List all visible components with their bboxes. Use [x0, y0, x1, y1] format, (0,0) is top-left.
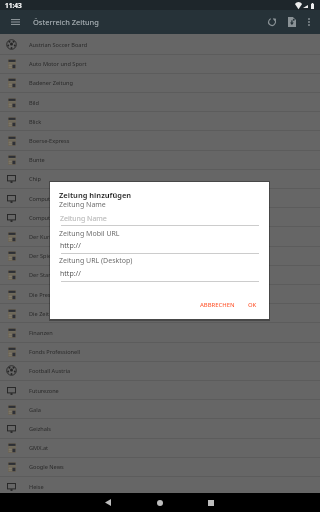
button[interactable]: More options [300, 13, 318, 31]
button[interactable]: Football Austria [0, 361, 320, 380]
button[interactable]: Die Zeit [0, 304, 320, 323]
staticText: 11:43 [5, 1, 22, 10]
button[interactable]: Auto Motor und Sport [0, 54, 320, 73]
button[interactable]: Gala [0, 400, 320, 419]
button[interactable]: Chip [0, 169, 320, 188]
staticText: Chip [29, 175, 41, 183]
staticText: Zeitung Name [60, 214, 107, 224]
staticText: http:// [60, 241, 81, 251]
staticText: Die Presse [29, 291, 57, 299]
button[interactable]: Computerwoche [0, 208, 320, 227]
button[interactable]: Back [93, 493, 123, 512]
staticText: Der Kurier [29, 233, 57, 241]
staticText: Fonds Professionell [29, 348, 81, 356]
staticText: Computerwoche [29, 214, 73, 222]
button[interactable]: Recent apps [196, 493, 226, 512]
button[interactable]: Heise [0, 477, 320, 496]
staticText: Boerse-Express [29, 137, 70, 145]
staticText: Zeitung hinzufügen [59, 190, 132, 200]
staticText: Heise [29, 483, 44, 491]
button[interactable]: Blick [0, 112, 320, 131]
button[interactable]: Computerbase [0, 189, 320, 208]
button[interactable]: Futurezone [0, 381, 320, 400]
staticText: Die Zeit [29, 310, 49, 318]
button[interactable]: Google News [0, 457, 320, 476]
button[interactable]: Add newspaper [283, 13, 301, 31]
button[interactable]: Fonds Professionell [0, 342, 320, 361]
button[interactable]: Boerse-Express [0, 131, 320, 150]
button[interactable]: Bild [0, 93, 320, 112]
staticText: Finanzen [29, 329, 53, 337]
staticText: Zeitung Name [59, 200, 106, 210]
staticText: Bild [29, 99, 39, 107]
staticText: http:// [60, 269, 81, 279]
staticText: Auto Motor und Sport [29, 60, 87, 68]
staticText: Austrian Soccer Board [29, 41, 88, 49]
button[interactable]: Bunte [0, 150, 320, 169]
button[interactable]: Home [145, 493, 175, 512]
button[interactable]: GMX.at [0, 438, 320, 457]
button[interactable]: Der Spiegel [0, 246, 320, 265]
button[interactable]: Finanzen [0, 323, 320, 342]
button[interactable]: Badener Zeitung [0, 73, 320, 92]
staticText: Zeitung URL (Desktop) [59, 256, 133, 266]
staticText: Blick [29, 118, 42, 126]
staticText: Football Austria [29, 367, 71, 375]
staticText: Gala [29, 406, 41, 414]
staticText: Google News [29, 463, 64, 471]
staticText: Futurezone [29, 387, 59, 395]
staticText: Der Standard [29, 271, 64, 279]
button[interactable]: Refresh [263, 13, 281, 31]
staticText: OK [248, 301, 257, 309]
button[interactable]: Open navigation drawer [6, 13, 24, 31]
button[interactable]: Der Standard [0, 265, 320, 284]
staticText: Geizhals [29, 425, 52, 433]
button[interactable]: OK [244, 297, 261, 313]
staticText: Der Spiegel [29, 252, 60, 260]
staticText: Zeitung Mobil URL [59, 229, 120, 239]
staticText: Österreich Zeitung [33, 17, 99, 27]
button[interactable]: Die Presse [0, 285, 320, 304]
button[interactable]: Der Kurier [0, 227, 320, 246]
button[interactable]: Geizhals [0, 419, 320, 438]
staticText: Badener Zeitung [29, 79, 73, 87]
button[interactable]: ABBRECHEN [196, 297, 239, 313]
staticText: Bunte [29, 156, 45, 164]
staticText: GMX.at [29, 444, 49, 452]
button[interactable]: Austrian Soccer Board [0, 35, 320, 54]
staticText: ABBRECHEN [200, 301, 235, 309]
staticText: Computerbase [29, 195, 68, 203]
